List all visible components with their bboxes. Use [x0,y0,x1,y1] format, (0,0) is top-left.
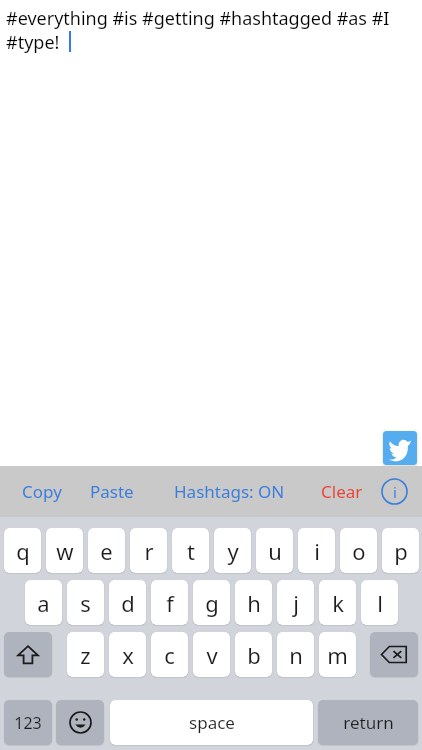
staticText: a [37,588,50,618]
button[interactable]: a [25,580,62,625]
button[interactable]: return [318,700,418,745]
button[interactable]: f [151,580,188,625]
button[interactable]: k [319,580,356,625]
staticText: b [247,640,261,670]
button[interactable]: Share on Twitter [383,431,417,465]
button[interactable]: t [172,528,209,573]
button[interactable]: Hashtags: ON [168,466,290,517]
staticText: #everything #is #getting #hashtagged #as… [6,6,416,54]
staticText: y [227,536,239,566]
staticText: Paste [90,480,134,503]
button[interactable]: p [382,528,419,573]
button[interactable]: r [130,528,167,573]
staticText: 123 [14,712,42,734]
staticText: q [16,536,30,566]
button[interactable]: 123 [4,700,52,745]
staticText: return [343,711,394,734]
staticText: f [166,588,174,618]
button[interactable]: space [110,700,313,745]
button[interactable]: i [298,528,335,573]
staticText: t [187,536,195,566]
button[interactable]: o [340,528,377,573]
button[interactable]: Backspace [370,632,418,677]
button[interactable]: q [4,528,41,573]
button[interactable]: z [67,632,104,677]
button[interactable]: e [88,528,125,573]
button[interactable]: y [214,528,251,573]
button[interactable]: b [235,632,272,677]
staticText: w [56,536,74,566]
button[interactable]: j [277,580,314,625]
button[interactable]: w [46,528,83,573]
button[interactable]: s [67,580,104,625]
staticText: x [122,640,134,670]
button[interactable]: Paste [80,466,144,517]
staticText: k [332,588,344,618]
button[interactable]: h [235,580,272,625]
staticText: g [205,588,219,618]
staticText: Copy [22,480,62,503]
staticText: z [80,640,91,670]
button[interactable]: Shift [4,632,52,677]
button[interactable]: u [256,528,293,573]
staticText: r [144,536,154,566]
button[interactable]: Emoji [56,700,104,745]
button[interactable]: Info [381,478,408,505]
button[interactable]: l [361,580,398,625]
staticText: i [314,536,320,566]
staticText: c [164,640,175,670]
button[interactable]: g [193,580,230,625]
staticText: n [289,640,303,670]
button[interactable]: Clear [311,466,373,517]
staticText: o [352,536,366,566]
staticText: h [247,588,261,618]
staticText: i [393,482,397,502]
staticText: u [268,536,282,566]
staticText: Clear [321,480,363,503]
button[interactable]: n [277,632,314,677]
staticText: d [121,588,135,618]
staticText: m [327,640,348,670]
staticText: e [100,536,113,566]
staticText: p [394,536,408,566]
button[interactable]: v [193,632,230,677]
button[interactable]: m [319,632,356,677]
staticText: v [206,640,218,670]
staticText: space [189,711,235,734]
button[interactable]: d [109,580,146,625]
button[interactable]: x [109,632,146,677]
staticText: l [377,588,383,618]
staticText: Hashtags: ON [174,480,285,503]
staticText: s [80,588,91,618]
button[interactable]: c [151,632,188,677]
staticText: j [293,588,299,618]
button[interactable]: Copy [12,466,72,517]
